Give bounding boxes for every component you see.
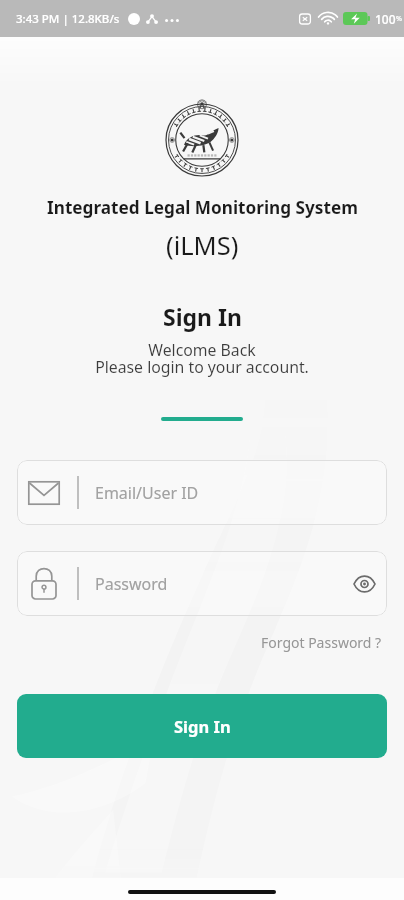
- staticText: %: [396, 14, 402, 24]
- button[interactable]: Show password: [349, 569, 379, 599]
- staticText: Integrated Legal Monitoring System: [47, 196, 358, 219]
- button[interactable]: Sign In: [17, 694, 387, 758]
- staticText: 3:43 PM | 12.8KB/s: [16, 11, 120, 27]
- staticText: Forgot Password ?: [261, 633, 382, 652]
- staticText: Password: [95, 573, 168, 595]
- button[interactable]: Password: [17, 551, 387, 616]
- staticText: Email/User ID: [95, 482, 199, 504]
- staticText: (iLMS): [166, 228, 239, 263]
- staticText: Sign In: [174, 715, 231, 737]
- button[interactable]: Email/User ID: [17, 460, 387, 525]
- staticText: Sign In: [163, 301, 242, 332]
- staticText: 100: [375, 11, 396, 27]
- staticText: Welcome Back Please login to your accoun…: [95, 339, 309, 378]
- button[interactable]: Forgot Password ?: [257, 630, 386, 655]
